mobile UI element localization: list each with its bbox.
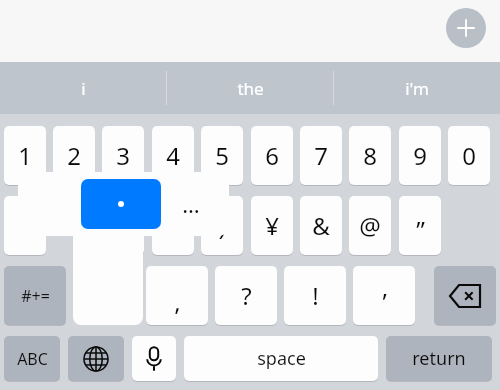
button[interactable]: 6	[251, 126, 293, 185]
staticText: 1	[18, 139, 32, 172]
button[interactable]: ’	[353, 266, 415, 325]
button[interactable]: #+=	[4, 266, 66, 325]
button[interactable]: ABC	[4, 336, 60, 381]
staticText: #+=	[21, 285, 50, 307]
staticText: ”	[416, 213, 425, 246]
staticText: return	[412, 346, 466, 371]
button[interactable]	[152, 196, 194, 255]
button[interactable]: return	[386, 336, 492, 381]
button[interactable]: the	[167, 62, 334, 114]
staticText: …	[182, 189, 200, 219]
staticText: 4	[166, 139, 180, 172]
button[interactable]: 2	[53, 126, 95, 185]
staticText: ,	[174, 285, 181, 318]
button[interactable]: ,	[146, 266, 208, 325]
other: Change keyboard	[68, 336, 124, 381]
staticText: 0	[462, 139, 476, 172]
button[interactable]: i'm	[333, 62, 500, 114]
staticText: @	[359, 209, 381, 242]
staticText: 2	[67, 139, 81, 172]
button[interactable]: …	[161, 179, 221, 229]
staticText: 9	[413, 139, 427, 172]
staticText: !	[312, 279, 319, 312]
button[interactable]: space	[184, 336, 378, 381]
staticText: 3	[116, 139, 130, 172]
button[interactable]	[102, 196, 144, 255]
staticText: the	[237, 77, 264, 100]
staticText: 7	[314, 139, 328, 172]
staticText: i	[81, 77, 86, 100]
button[interactable]: 9	[399, 126, 441, 185]
button[interactable]: 8	[349, 126, 391, 185]
button[interactable]: &	[300, 196, 342, 255]
button[interactable]: ?	[215, 266, 277, 325]
button[interactable]: 5	[201, 126, 243, 185]
staticText: ’	[382, 285, 387, 318]
button[interactable]: -	[4, 196, 46, 255]
staticText: 6	[265, 139, 279, 172]
button[interactable]: )	[201, 196, 243, 255]
button[interactable]: Add	[446, 8, 486, 48]
staticText: space	[257, 346, 306, 371]
button[interactable]	[132, 336, 176, 381]
button[interactable]: 0	[448, 126, 490, 185]
staticText: )	[218, 209, 226, 242]
button[interactable]: 3	[102, 126, 144, 185]
button[interactable]: 4	[152, 126, 194, 185]
staticText: i'm	[405, 77, 429, 100]
button[interactable]: @	[349, 196, 391, 255]
button[interactable]	[68, 336, 124, 381]
button[interactable]: ”	[399, 196, 441, 255]
staticText: ABC	[17, 348, 48, 370]
button[interactable]: i	[0, 62, 167, 114]
other: Delete	[434, 266, 496, 325]
staticText: 8	[363, 139, 377, 172]
staticText: &	[312, 209, 330, 242]
button[interactable]	[81, 179, 161, 229]
button[interactable]: ¥	[251, 196, 293, 255]
staticText: ?	[241, 279, 252, 312]
button[interactable]	[434, 266, 496, 325]
other: Dictate	[132, 336, 176, 381]
button[interactable]: 1	[4, 126, 46, 185]
button[interactable]: !	[284, 266, 346, 325]
button[interactable]: 7	[300, 126, 342, 185]
staticText: ¥	[265, 209, 279, 242]
staticText: 5	[215, 139, 229, 172]
